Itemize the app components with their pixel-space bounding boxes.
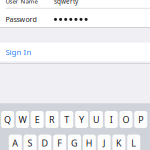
staticText: User Name: [6, 0, 38, 5]
button[interactable]: O: [119, 111, 132, 128]
staticText: I: [110, 113, 113, 126]
button[interactable]: S: [24, 135, 37, 150]
staticText: U: [93, 113, 100, 126]
staticText: P: [138, 113, 143, 126]
button[interactable]: I: [105, 111, 118, 128]
staticText: E: [35, 113, 40, 126]
staticText: G: [71, 137, 78, 149]
button[interactable]: K: [112, 135, 125, 150]
button[interactable]: Sign In: [0, 43, 150, 61]
staticText: D: [41, 137, 48, 149]
staticText: H: [86, 137, 93, 149]
button[interactable]: D: [38, 135, 51, 150]
staticText: S: [28, 137, 33, 149]
staticText: R: [49, 113, 55, 126]
staticText: Password: [6, 14, 37, 24]
button[interactable]: L: [127, 135, 140, 150]
staticText: W: [18, 113, 26, 126]
button[interactable]: Q: [1, 111, 14, 128]
button[interactable]: F: [53, 135, 66, 150]
staticText: L: [131, 137, 136, 149]
button[interactable]: Password: [0, 10, 150, 29]
staticText: J: [103, 137, 105, 149]
button[interactable]: G: [68, 135, 81, 150]
staticText: F: [57, 137, 62, 149]
button[interactable]: J: [98, 135, 111, 150]
button[interactable]: T: [60, 111, 73, 128]
staticText: T: [64, 113, 69, 126]
staticText: sqwerty: [54, 0, 78, 5]
staticText: A: [12, 137, 18, 149]
button[interactable]: H: [83, 135, 96, 150]
staticText: Y: [79, 113, 84, 126]
button[interactable]: Y: [75, 111, 88, 128]
staticText: O: [122, 113, 129, 126]
staticText: Sign In: [6, 47, 32, 57]
button[interactable]: E: [31, 111, 44, 128]
staticText: K: [116, 137, 122, 149]
button[interactable]: R: [45, 111, 58, 128]
button[interactable]: U: [90, 111, 103, 128]
button[interactable]: A: [9, 135, 22, 150]
button[interactable]: W: [16, 111, 29, 128]
button[interactable]: P: [134, 111, 147, 128]
staticText: Q: [4, 113, 11, 126]
button[interactable]: User Name: [0, 0, 150, 7]
